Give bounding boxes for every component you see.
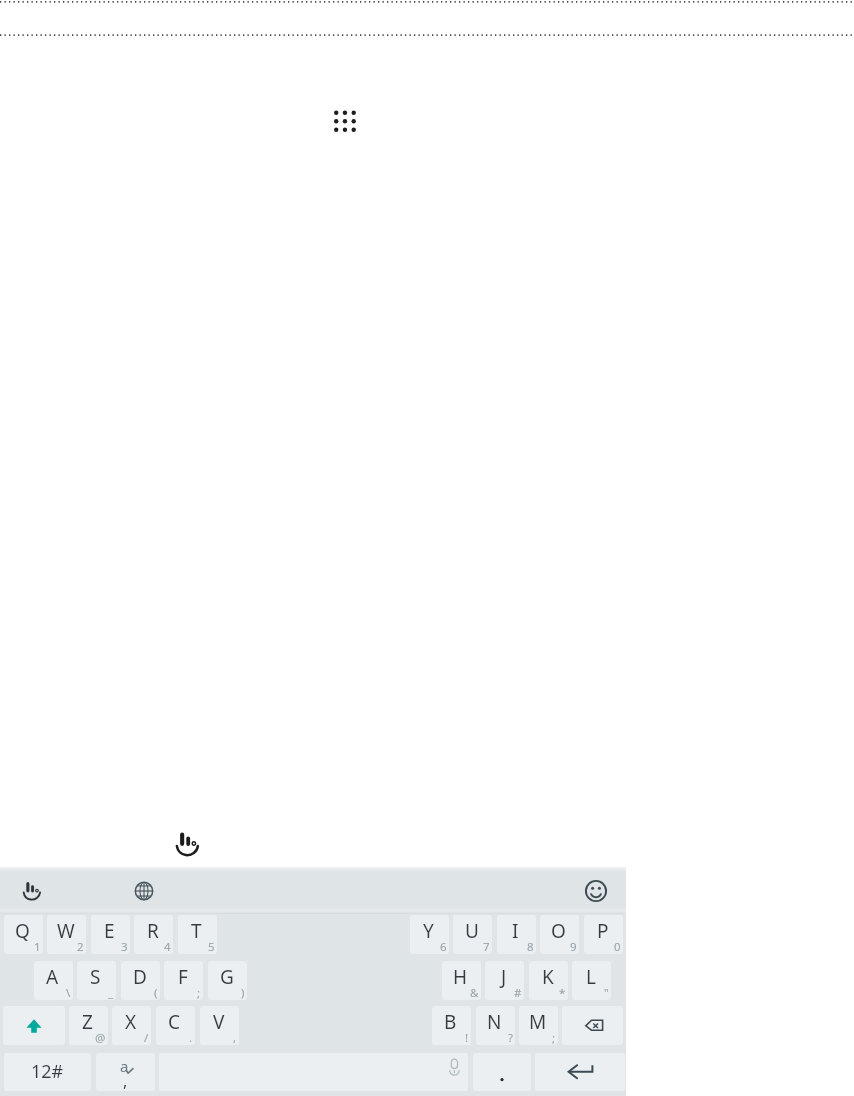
staticText: W (57, 918, 75, 944)
button[interactable]: Shift (3, 1006, 65, 1045)
button[interactable]: Enter (535, 1053, 625, 1091)
button[interactable]: H (442, 961, 481, 1000)
staticText: 5 (208, 939, 215, 954)
staticText: 4 (164, 939, 171, 954)
button[interactable]: Y (410, 915, 449, 954)
staticText: I (512, 918, 519, 944)
button[interactable]: Language (134, 881, 154, 901)
staticText: N (487, 1009, 502, 1035)
staticText: E (104, 918, 115, 944)
button[interactable]: Space (159, 1053, 468, 1091)
button[interactable]: Period (473, 1053, 531, 1091)
staticText: R (147, 918, 159, 944)
button[interactable]: T (178, 915, 217, 954)
staticText: / (144, 1030, 149, 1045)
staticText: ( (154, 985, 158, 1000)
button[interactable]: R (134, 915, 173, 954)
button[interactable]: I (497, 915, 536, 954)
staticText: G (220, 964, 234, 990)
button[interactable]: S (77, 961, 116, 1000)
staticText: X (125, 1009, 137, 1035)
button[interactable]: E (91, 915, 130, 954)
staticText: S (90, 964, 101, 990)
staticText: D (133, 964, 147, 990)
staticText: _ (108, 985, 114, 1000)
button[interactable]: P (584, 915, 623, 954)
staticText: C (168, 1009, 181, 1035)
staticText: 6 (440, 939, 447, 954)
staticText: 3 (121, 939, 128, 954)
button[interactable]: G (208, 961, 247, 1000)
button[interactable]: Keyboard menu (20, 877, 45, 902)
staticText: & (470, 985, 479, 1000)
button[interactable]: X (112, 1006, 151, 1045)
staticText: 2 (77, 939, 84, 954)
button[interactable]: K (529, 961, 568, 1000)
staticText: , (123, 1070, 128, 1091)
staticText: ? (508, 1030, 513, 1045)
staticText: H (453, 964, 468, 990)
button[interactable]: Z (69, 1006, 108, 1045)
staticText: K (542, 964, 554, 990)
staticText: @ (95, 1030, 106, 1045)
staticText: ; (197, 985, 201, 1000)
staticText: U (465, 918, 479, 944)
button[interactable]: O (540, 915, 579, 954)
button[interactable]: N (476, 1006, 515, 1045)
button[interactable]: Language switch (96, 1053, 155, 1091)
staticText: ; (552, 1030, 556, 1045)
staticText: ) (241, 985, 245, 1000)
staticText: M (529, 1009, 547, 1035)
staticText: P (597, 918, 609, 944)
staticText: " (604, 985, 609, 1000)
staticText: * (559, 985, 566, 1000)
staticText: ! (465, 1030, 469, 1045)
button[interactable]: Q (4, 915, 43, 954)
button[interactable]: Backspace (562, 1006, 623, 1045)
staticText: 9 (570, 939, 577, 954)
staticText: Q (15, 918, 30, 944)
button[interactable]: Emoji (585, 880, 607, 902)
staticText: Z (82, 1009, 93, 1035)
button[interactable]: F (164, 961, 203, 1000)
staticText: B (444, 1009, 457, 1035)
button[interactable]: M (519, 1006, 558, 1045)
button[interactable]: W (47, 915, 86, 954)
staticText: , (233, 1030, 237, 1045)
button[interactable]: U (453, 915, 492, 954)
button[interactable]: Numbers and symbols (4, 1053, 91, 1091)
staticText: 8 (527, 939, 534, 954)
button[interactable]: V (200, 1006, 239, 1045)
button[interactable]: C (156, 1006, 195, 1045)
staticText: F (178, 964, 188, 990)
staticText: . (189, 1030, 193, 1045)
staticText: \ (66, 985, 71, 1000)
staticText: A (46, 964, 59, 990)
button[interactable]: Apps (326, 102, 366, 142)
button[interactable]: L (572, 961, 611, 1000)
button[interactable]: B (432, 1006, 471, 1045)
staticText: a (120, 1056, 129, 1076)
staticText: Y (423, 918, 434, 944)
staticText: L (586, 964, 596, 990)
staticText: 1 (34, 939, 41, 954)
staticText: V (213, 1009, 225, 1035)
staticText: 7 (483, 939, 490, 954)
button[interactable]: D (121, 961, 160, 1000)
button[interactable]: J (485, 961, 524, 1000)
staticText: T (191, 918, 202, 944)
button[interactable]: Keyboard (172, 826, 204, 858)
button[interactable]: A (34, 961, 73, 1000)
staticText: O (551, 918, 566, 944)
staticText: J (501, 964, 507, 990)
staticText: # (514, 985, 522, 1000)
staticText: 0 (614, 939, 621, 954)
staticText: 12# (31, 1059, 64, 1084)
